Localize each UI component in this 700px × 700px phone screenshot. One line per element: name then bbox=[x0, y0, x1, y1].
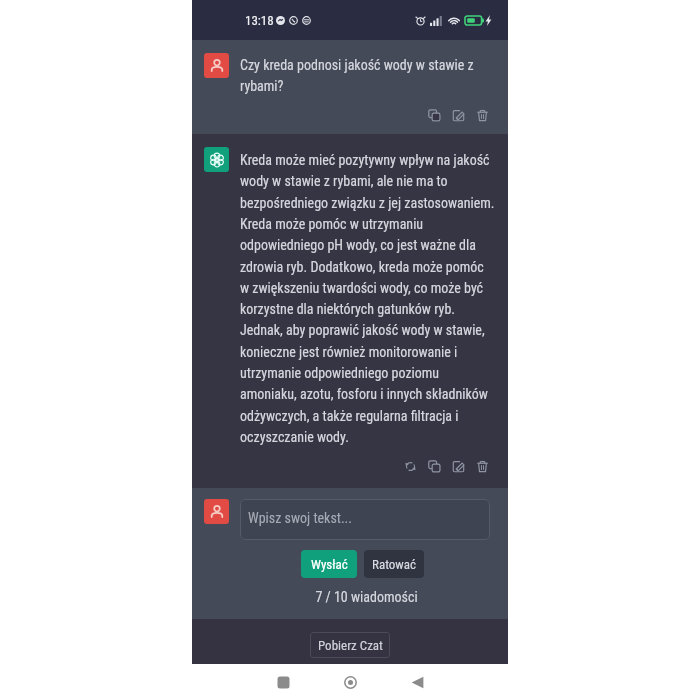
staticText: amoniaku, azotu, fosforu i innych składn… bbox=[240, 386, 488, 402]
button[interactable]: Ratować bbox=[364, 550, 424, 578]
staticText: 7 / 10 wiadomości bbox=[225, 589, 508, 605]
staticText: 13:18 bbox=[245, 13, 274, 28]
staticText: oczyszczanie wody. bbox=[240, 429, 349, 445]
staticText: Wysłać bbox=[311, 557, 348, 572]
staticText: Kreda może mieć pozytywny wpływ na jakoś… bbox=[240, 152, 490, 168]
staticText: Kreda może pomóc w utrzymaniu bbox=[240, 216, 424, 232]
staticText: odżywczych, a także regularna filtracja … bbox=[240, 408, 459, 424]
staticText: Ratować bbox=[372, 557, 417, 572]
staticText: korzystne dla niektórych gatunków ryb. bbox=[240, 301, 455, 317]
staticText: Jednak, aby poprawić jakość wody w stawi… bbox=[240, 322, 485, 338]
staticText: odpowiedniego pH wody, co jest ważne dla bbox=[240, 237, 476, 253]
staticText: rybami? bbox=[240, 78, 284, 94]
button[interactable]: Pobierz Czat bbox=[310, 632, 390, 658]
staticText: Pobierz Czat bbox=[318, 638, 383, 653]
button[interactable]: Back bbox=[405, 670, 429, 694]
button[interactable]: Edit bbox=[449, 457, 467, 475]
staticText: konieczne jest również monitorowanie i bbox=[240, 344, 458, 360]
button[interactable]: Recents bbox=[271, 670, 295, 694]
button[interactable]: Delete bbox=[473, 106, 491, 124]
button[interactable]: Wpisz swoj tekst... bbox=[240, 499, 490, 540]
staticText: w zwiększeniu twardości wody, co może by… bbox=[240, 280, 484, 296]
staticText: Czy kreda podnosi jakość wody w stawie z bbox=[240, 57, 474, 73]
staticText: wody w stawie z rybami, ale nie ma to bbox=[240, 173, 448, 189]
button[interactable]: Delete bbox=[473, 457, 491, 475]
button[interactable]: Regenerate bbox=[401, 457, 419, 475]
button[interactable]: Copy bbox=[425, 106, 443, 124]
button[interactable]: Edit bbox=[449, 106, 467, 124]
staticText: Wpisz swoj tekst... bbox=[248, 510, 353, 526]
staticText: bezpośredniego związku z jej zastosowani… bbox=[240, 195, 495, 211]
button[interactable]: Home bbox=[338, 670, 362, 694]
staticText: zdrowia ryb. Dodatkowo, kreda może pomóc bbox=[240, 259, 484, 275]
button[interactable]: Wysłać bbox=[301, 550, 357, 578]
button[interactable]: Copy bbox=[425, 457, 443, 475]
staticText: utrzymanie odpowiedniego poziomu bbox=[240, 365, 440, 381]
